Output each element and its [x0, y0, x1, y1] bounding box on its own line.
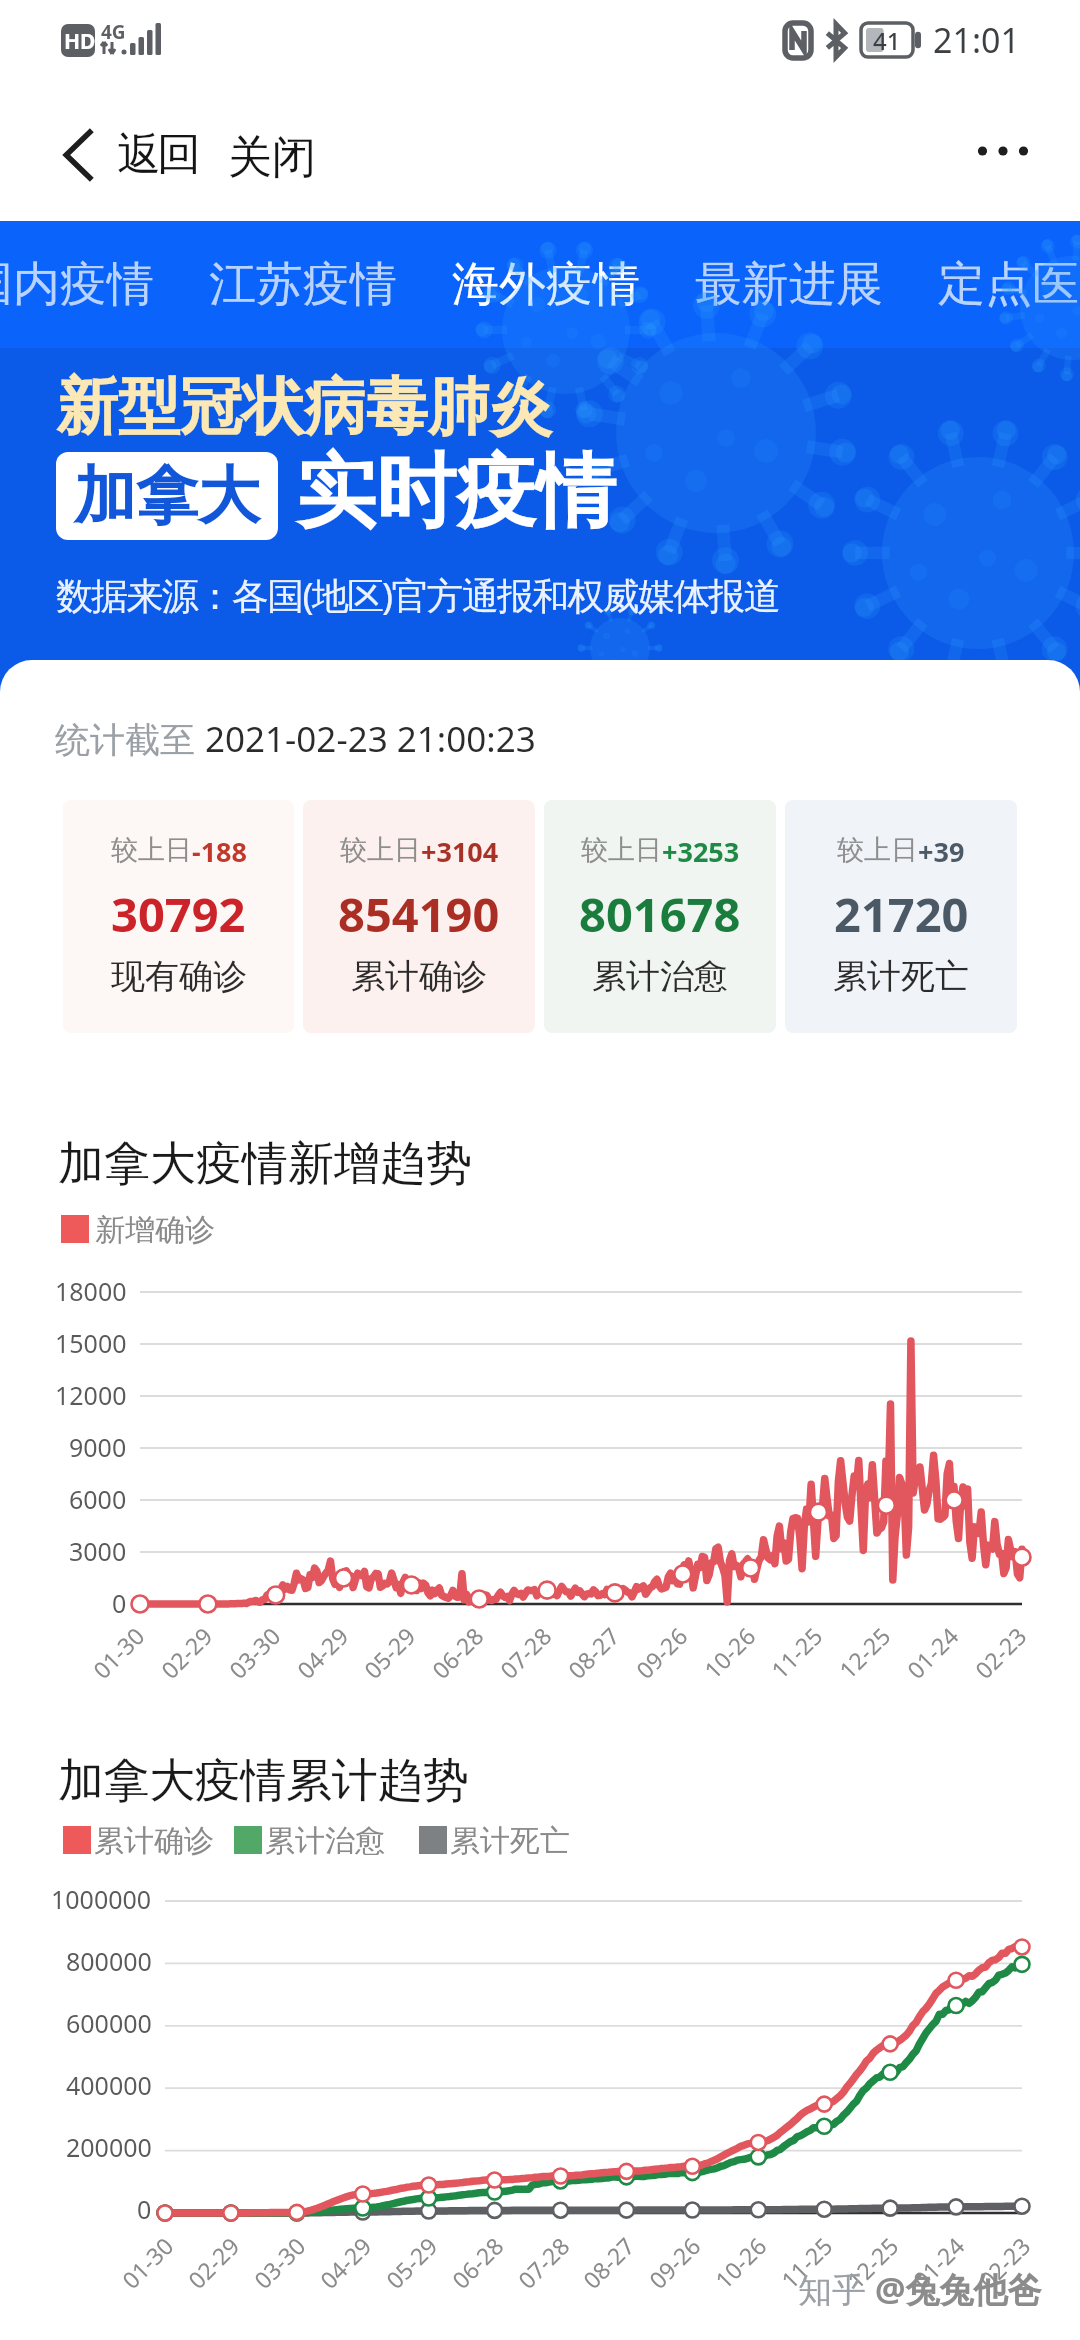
staticText: 返回: [119, 127, 199, 182]
staticText: 累计治愈: [265, 1822, 385, 1860]
button[interactable]: 较上日: [544, 800, 776, 1033]
staticText: 800000: [66, 1944, 152, 1978]
button[interactable]: 较上日: [785, 800, 1017, 1033]
staticText: 01-30: [115, 2230, 180, 2295]
staticText: 06-28: [445, 2230, 510, 2295]
staticText: 08-27: [561, 1620, 626, 1685]
staticText: 0: [112, 1586, 127, 1620]
staticText: 07-28: [493, 1620, 558, 1685]
staticText: 15000: [55, 1326, 127, 1360]
staticText: 07-28: [511, 2230, 576, 2295]
staticText: 10-26: [697, 1620, 762, 1685]
button[interactable]: 关闭: [228, 91, 316, 224]
staticText: 04-29: [290, 1620, 355, 1685]
staticText: 6000: [69, 1482, 127, 1516]
staticText: 2021-02-23 21:00:23: [205, 715, 536, 763]
staticText: +3253: [662, 833, 740, 870]
button[interactable]: Back: [59, 88, 199, 221]
staticText: 累计死亡: [833, 955, 969, 998]
staticText: 较上日: [111, 833, 192, 867]
button[interactable]: 较上日: [63, 800, 294, 1033]
staticText: 较上日: [837, 833, 918, 867]
staticText: 3000: [69, 1534, 127, 1568]
staticText: 新型冠状病毒肺炎: [56, 368, 552, 446]
staticText: 加拿大疫情新增趋势: [58, 1135, 472, 1193]
staticText: 09-26: [642, 2230, 707, 2295]
staticText: 02-23: [968, 1620, 1033, 1685]
staticText: 0: [137, 2192, 152, 2226]
staticText: 02-29: [181, 2230, 246, 2295]
staticText: 12-25: [840, 2230, 905, 2295]
staticText: 较上日: [581, 833, 662, 867]
other: Back: [59, 128, 99, 182]
staticText: HD: [64, 27, 96, 56]
staticText: 10-26: [708, 2230, 773, 2295]
staticText: 国内疫情: [0, 255, 154, 314]
staticText: 4G: [101, 19, 126, 45]
staticText: 08-27: [576, 2230, 641, 2295]
staticText: 18000: [55, 1274, 127, 1308]
staticText: @兔兔他爸: [875, 2266, 1042, 2312]
staticText: 1000000: [51, 1882, 152, 1916]
staticText: 江苏疫情: [209, 255, 397, 314]
staticText: 03-30: [247, 2230, 312, 2295]
button[interactable]: More options: [943, 88, 1063, 221]
staticText: 累计确诊: [351, 955, 487, 998]
staticText: 11-25: [774, 2230, 839, 2295]
staticText: 实时疫情: [296, 442, 616, 543]
staticText: 02-23: [972, 2230, 1037, 2295]
staticText: 21:01: [933, 17, 1020, 63]
staticText: 最新进展: [695, 255, 883, 314]
staticText: 数据来源：各国(地区)官方通报和权威媒体报道: [56, 569, 779, 620]
staticText: 801678: [579, 882, 741, 946]
staticText: 新增确诊: [95, 1211, 215, 1249]
staticText: 加拿大疫情累计趋势: [58, 1752, 469, 1810]
staticText: 05-29: [357, 1620, 422, 1685]
staticText: +39: [918, 833, 965, 870]
staticText: 累计治愈: [592, 955, 728, 998]
staticText: 06-28: [425, 1620, 490, 1685]
staticText: 02-29: [154, 1620, 219, 1685]
staticText: +3104: [421, 833, 499, 870]
staticText: 现有确诊: [111, 955, 247, 998]
staticText: 21720: [834, 882, 969, 946]
staticText: 01-24: [900, 1620, 965, 1685]
staticText: 200000: [66, 2130, 152, 2164]
staticText: 09-26: [629, 1620, 694, 1685]
staticText: 11-25: [764, 1620, 829, 1685]
staticText: 海外疫情: [452, 255, 640, 314]
staticText: 加拿大: [74, 457, 260, 535]
staticText: 较上日: [340, 833, 421, 867]
staticText: -188: [192, 833, 247, 870]
staticText: 04-29: [313, 2230, 378, 2295]
staticText: 定点医院: [938, 255, 1080, 314]
staticText: 854190: [338, 882, 500, 946]
button[interactable]: 较上日: [303, 800, 535, 1033]
button[interactable]: 最新进展: [694, 221, 884, 348]
staticText: 05-29: [379, 2230, 444, 2295]
staticText: 统计截至: [55, 715, 205, 763]
staticText: 累计确诊: [94, 1822, 214, 1860]
staticText: 03-30: [222, 1620, 287, 1685]
staticText: 01-24: [906, 2230, 971, 2295]
staticText: 01-30: [86, 1620, 151, 1685]
staticText: 12-25: [832, 1620, 897, 1685]
button[interactable]: 定点医院: [937, 221, 1080, 348]
staticText: 41: [873, 24, 901, 57]
staticText: 关闭: [228, 130, 316, 185]
staticText: 12000: [55, 1378, 127, 1412]
staticText: 累计死亡: [450, 1822, 570, 1860]
button[interactable]: 江苏疫情: [208, 221, 398, 348]
staticText: 知乎: [798, 2266, 875, 2312]
button[interactable]: 海外疫情: [451, 221, 641, 348]
staticText: 600000: [66, 2006, 152, 2040]
staticText: 30792: [111, 882, 246, 946]
staticText: 9000: [69, 1430, 127, 1464]
button[interactable]: 国内疫情: [0, 221, 155, 348]
staticText: 400000: [66, 2068, 152, 2102]
